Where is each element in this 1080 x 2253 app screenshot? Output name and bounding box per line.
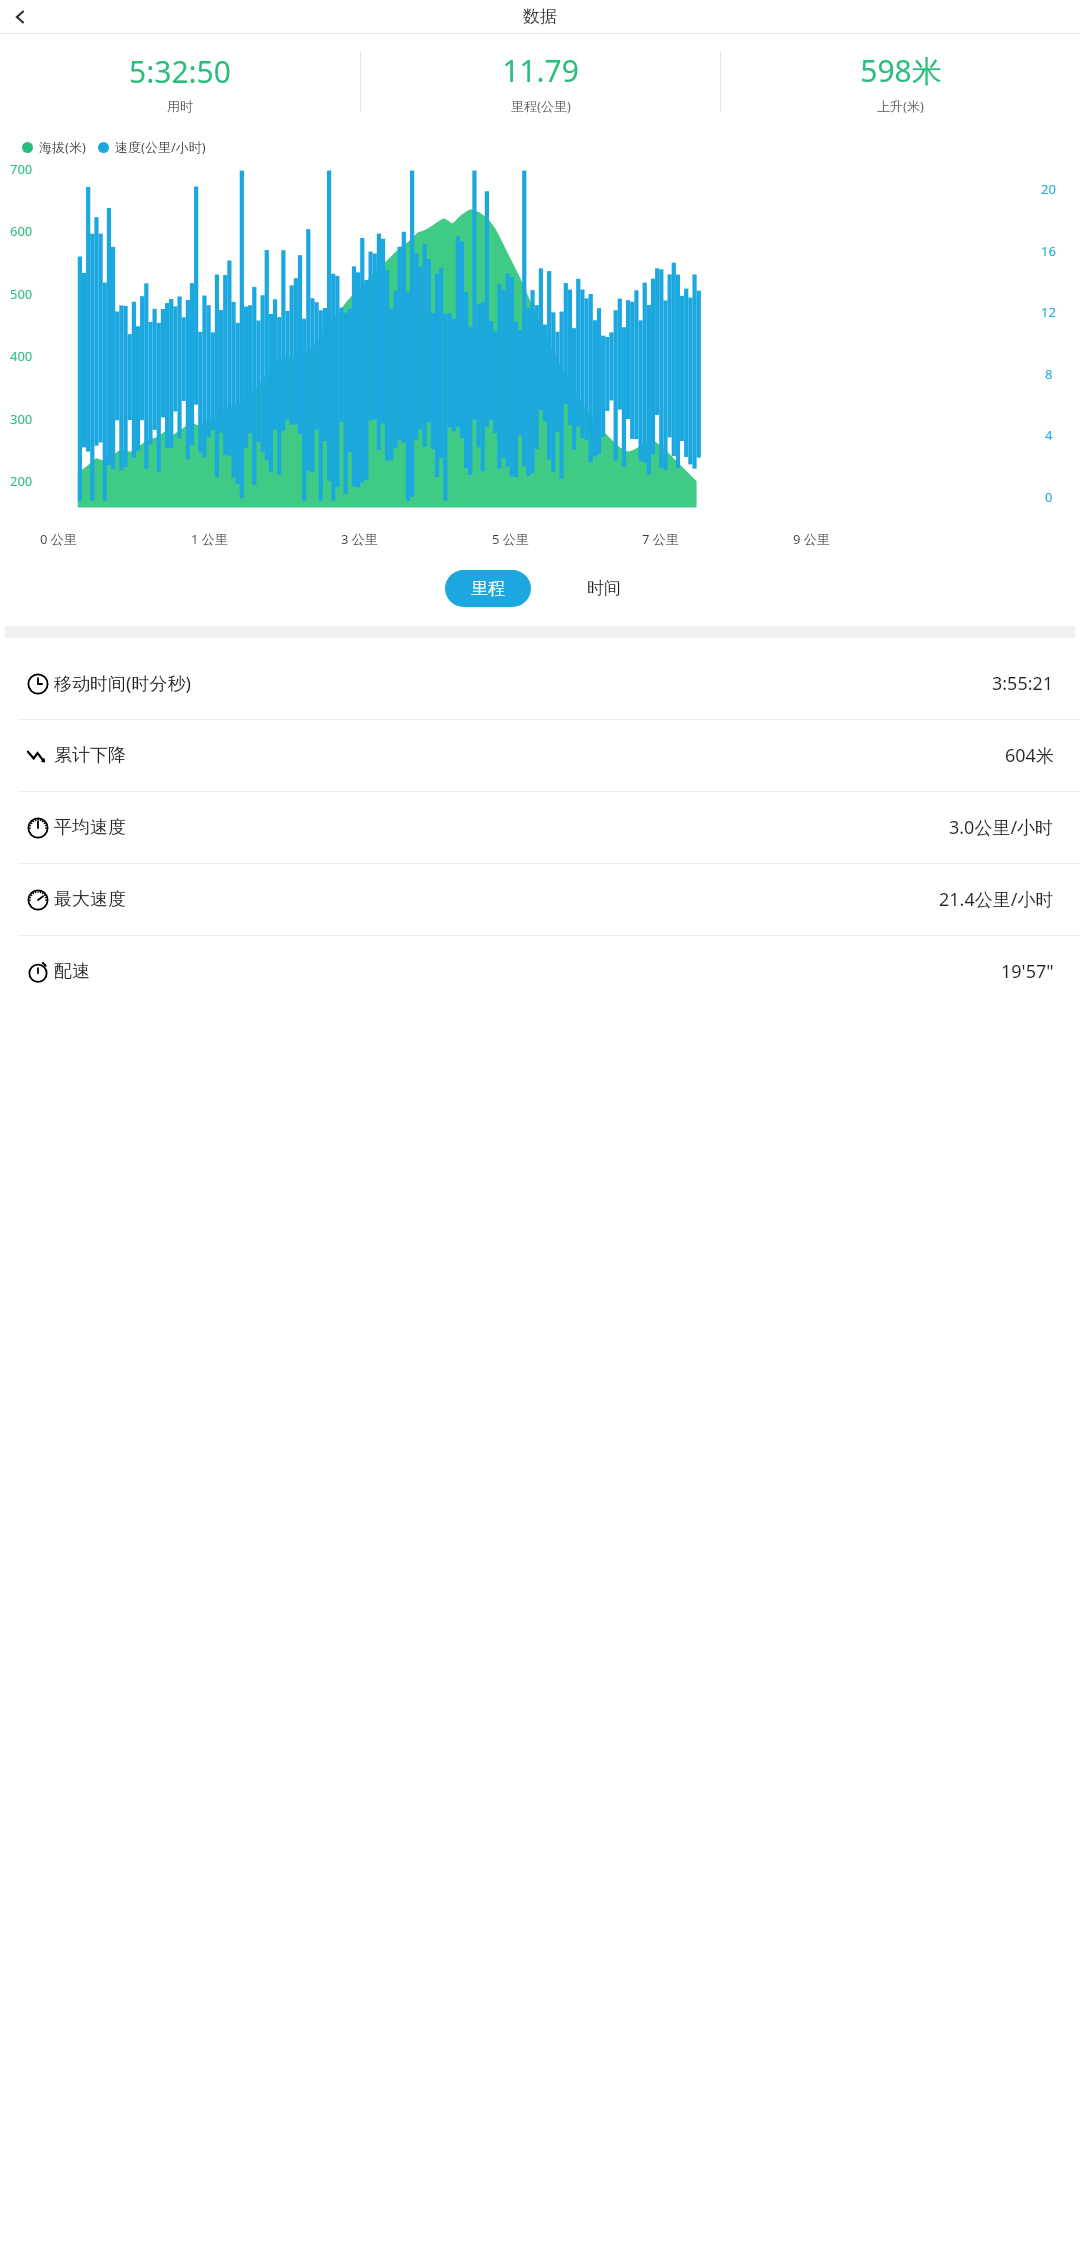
staticText: 19'57"	[1001, 959, 1054, 984]
staticText: 400	[10, 347, 33, 365]
staticText: 平均速度	[54, 816, 126, 839]
staticText: 20	[1041, 180, 1056, 198]
staticText: 598米	[860, 50, 942, 91]
staticText: 21.4公里/小时	[939, 887, 1054, 912]
staticText: 3 公里	[341, 530, 378, 548]
staticText: 3.0公里/小时	[949, 815, 1054, 840]
staticText: 3:55:21	[992, 671, 1054, 696]
staticText: 604米	[1005, 743, 1054, 768]
staticText: 累计下降	[54, 744, 126, 767]
staticText: 数据	[523, 6, 557, 27]
staticText: 16	[1041, 242, 1056, 260]
button[interactable]: 时间	[573, 570, 635, 607]
staticText: 500	[10, 285, 33, 303]
staticText: 里程	[471, 578, 505, 599]
button[interactable]: 最大速度	[0, 864, 1080, 935]
staticText: 里程(公里)	[511, 97, 571, 115]
staticText: 700	[10, 160, 33, 178]
staticText: 12	[1041, 303, 1056, 321]
staticText: 时间	[587, 578, 621, 599]
staticText: 4	[1045, 426, 1053, 444]
staticText: 5 公里	[492, 530, 529, 548]
staticText: 速度(公里/小时)	[115, 138, 206, 156]
button[interactable]: 移动时间(时分秒)	[0, 648, 1080, 719]
staticText: 11.79	[502, 50, 579, 91]
staticText: 8	[1045, 365, 1053, 383]
staticText: 最大速度	[54, 888, 126, 911]
staticText: 海拔(米)	[39, 138, 86, 156]
staticText: 5:32:50	[129, 51, 231, 92]
staticText: 7 公里	[642, 530, 679, 548]
button[interactable]: 里程	[445, 570, 531, 607]
button[interactable]: Back	[9, 6, 31, 28]
button[interactable]: 11.79	[361, 50, 720, 115]
staticText: 0 公里	[40, 530, 77, 548]
staticText: 1 公里	[191, 530, 228, 548]
staticText: 移动时间(时分秒)	[54, 671, 191, 696]
staticText: 9 公里	[793, 530, 830, 548]
button[interactable]: 平均速度	[0, 792, 1080, 863]
button[interactable]: 累计下降	[0, 720, 1080, 791]
staticText: 0	[1045, 488, 1053, 506]
staticText: 用时	[167, 98, 193, 114]
staticText: 配速	[54, 960, 90, 983]
button[interactable]: 598米	[721, 50, 1080, 115]
button[interactable]: 配速	[0, 936, 1080, 1007]
staticText: 200	[10, 472, 33, 490]
staticText: 600	[10, 222, 33, 240]
staticText: 300	[10, 410, 33, 428]
staticText: 上升(米)	[877, 97, 924, 115]
button[interactable]: 5:32:50	[0, 51, 360, 114]
